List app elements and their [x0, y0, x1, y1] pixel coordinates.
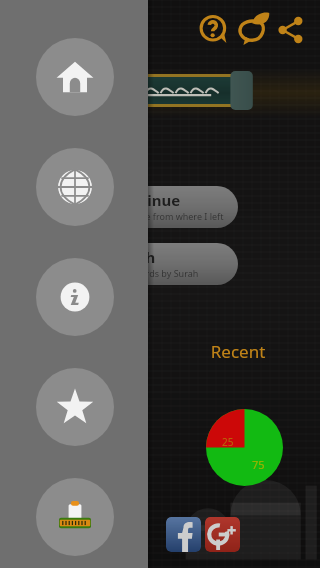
- button[interactable]: Facebook: [166, 517, 201, 552]
- button[interactable]: Home: [36, 38, 114, 116]
- button[interactable]: Language: [36, 148, 114, 226]
- button[interactable]: Google Plus: [205, 517, 240, 552]
- button[interactable]: Help: [200, 15, 228, 45]
- staticText: Surah: [112, 247, 156, 267]
- button[interactable]: Continue: [96, 186, 238, 228]
- button[interactable]: Info: [36, 258, 114, 336]
- staticText: 25: [222, 435, 234, 449]
- button[interactable]: Progress chart: [206, 409, 283, 486]
- button[interactable]: Favourites: [36, 368, 114, 446]
- button[interactable]: Feedback: [238, 11, 272, 45]
- button[interactable]: Surah: [96, 243, 238, 285]
- staticText: Continue from where I left: [112, 210, 224, 222]
- staticText: Flash cards by Surah: [112, 267, 199, 279]
- button[interactable]: Share: [277, 16, 305, 44]
- staticText: 75: [252, 457, 265, 472]
- staticText: Continue: [112, 190, 181, 210]
- button[interactable]: Score: [36, 478, 114, 556]
- staticText: Recent: [178, 340, 298, 568]
